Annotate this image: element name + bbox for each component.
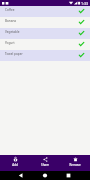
staticText: Add — [12, 163, 18, 167]
button[interactable]: Coffee — [0, 6, 90, 17]
button[interactable]: Share list — [30, 155, 60, 167]
staticText: 1:33 — [81, 1, 89, 6]
staticText: Yogurt — [5, 41, 15, 45]
button[interactable]: Towel paper — [0, 50, 90, 61]
staticText: Coffee — [5, 8, 15, 12]
button[interactable]: Banana — [0, 17, 90, 28]
button[interactable]: Yogurt — [0, 39, 90, 50]
staticText: Banana — [5, 19, 17, 23]
staticText: Vegetable — [5, 30, 20, 34]
staticText: Share — [41, 163, 49, 167]
staticText: Towel paper — [5, 52, 23, 56]
staticText: Remove — [69, 163, 81, 167]
button[interactable]: Add item — [0, 155, 30, 167]
button[interactable]: Vegetable — [0, 28, 90, 39]
button[interactable]: Remove item — [60, 155, 90, 167]
